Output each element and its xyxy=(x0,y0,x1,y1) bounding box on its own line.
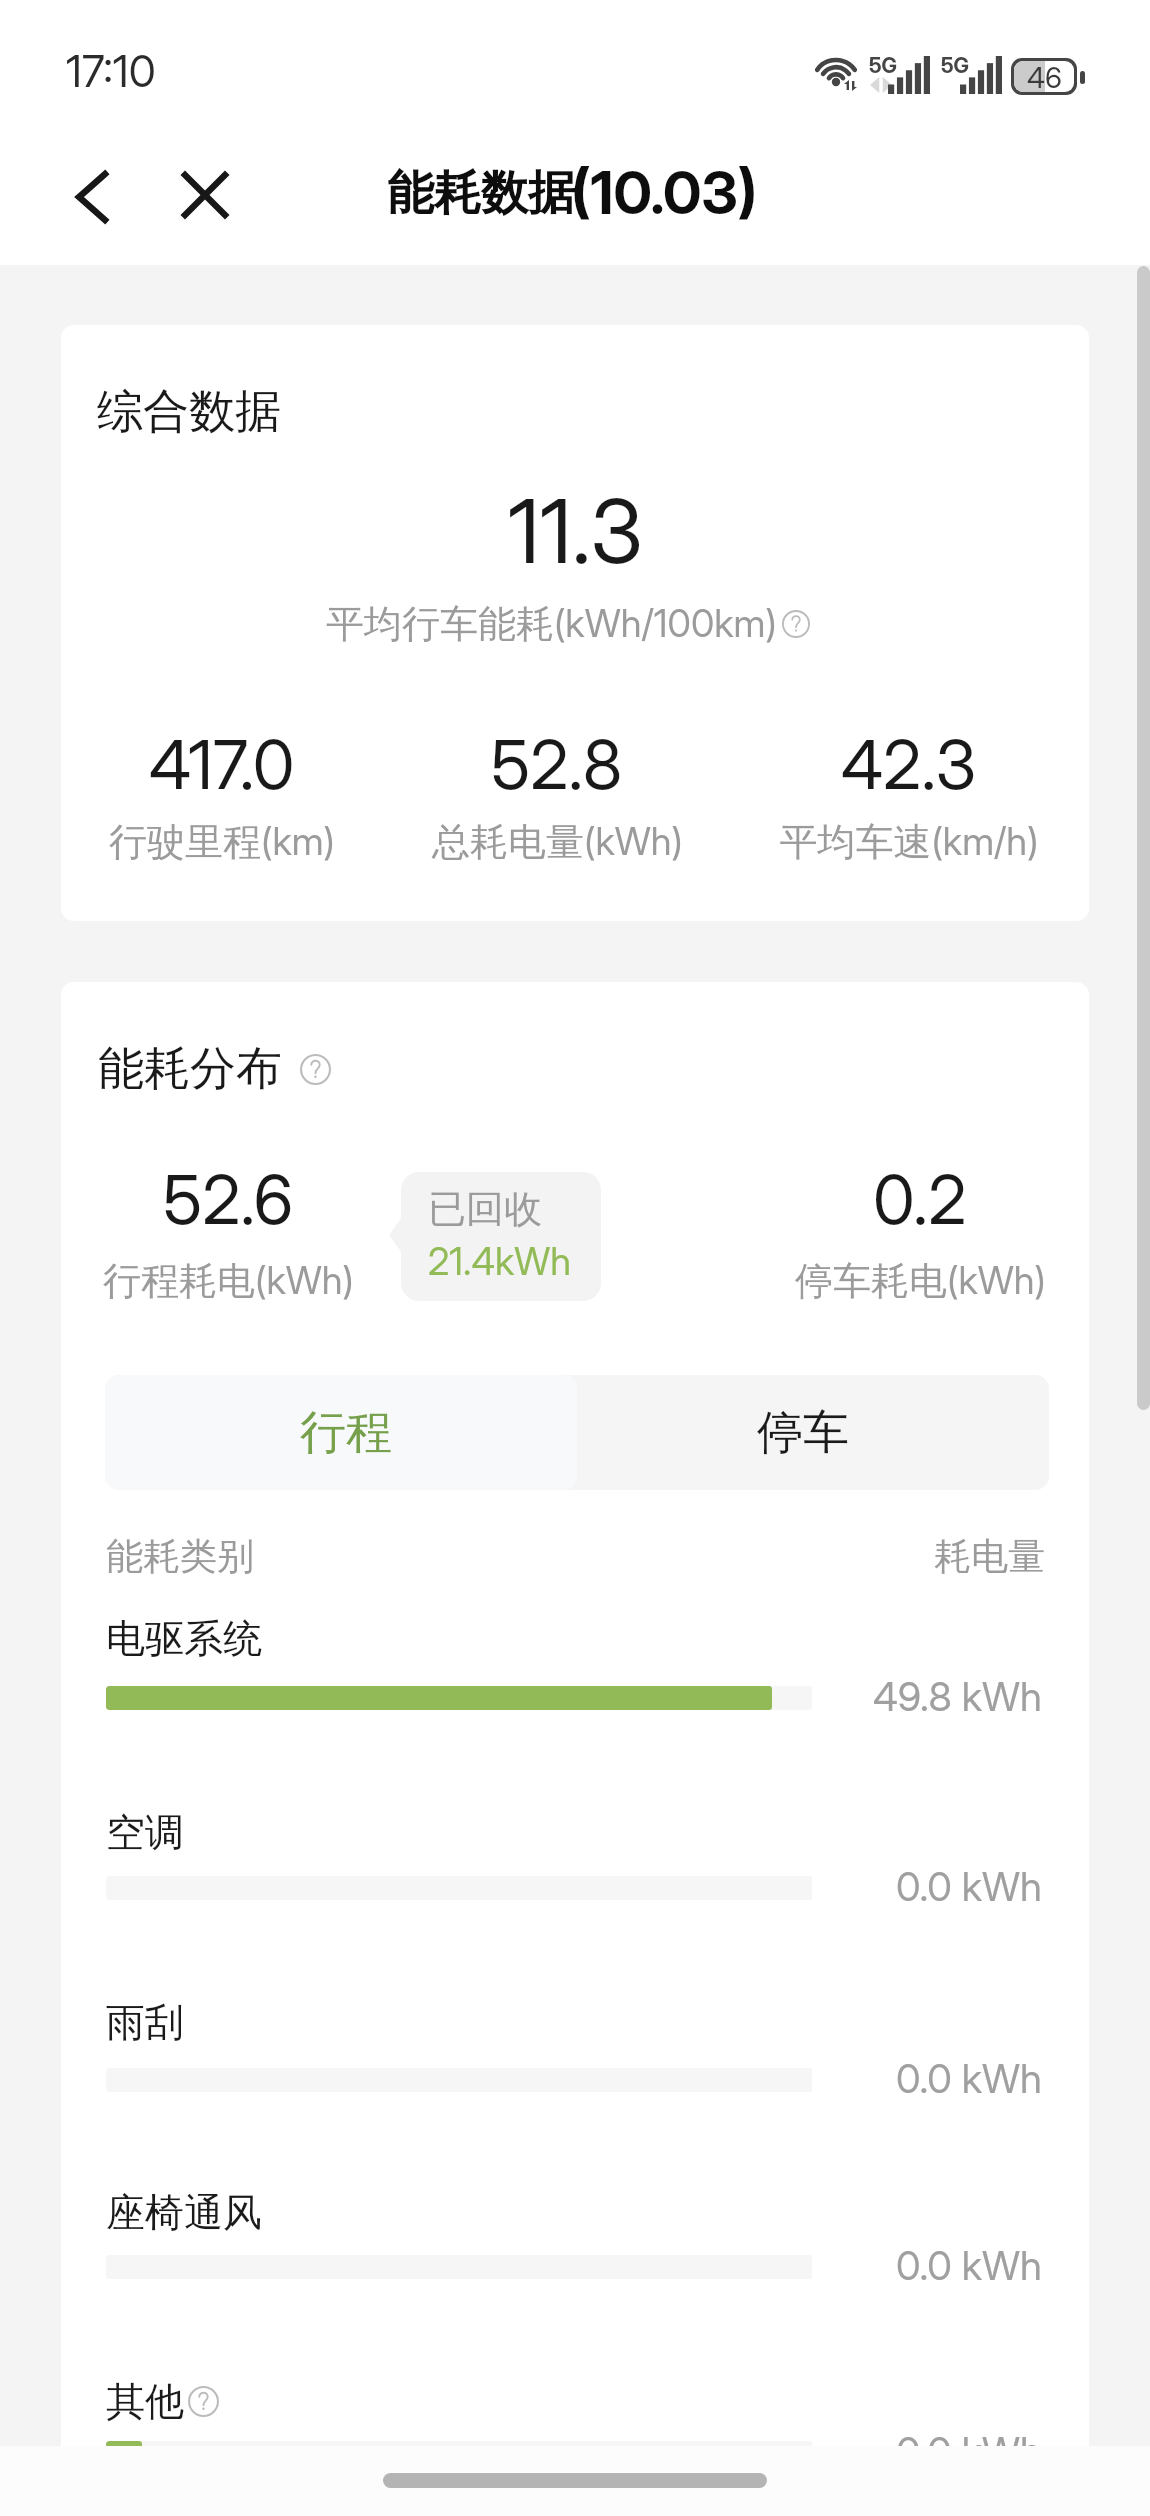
staticText: 行程 xyxy=(300,1404,392,1462)
staticText: 能耗数据 xyxy=(387,164,575,223)
staticText: 17:10 xyxy=(66,44,156,97)
staticText: 能耗类别 xyxy=(106,1533,254,1580)
staticText: 综合数据 xyxy=(97,383,281,441)
button[interactable]: About average consumption xyxy=(782,610,810,638)
staticText: 0.2 xyxy=(873,1158,967,1240)
button[interactable]: Close xyxy=(164,150,246,240)
staticText: 0.0 kWh xyxy=(896,2241,1042,2289)
staticText: 耗电量 xyxy=(934,1533,1045,1580)
staticText: 座椅通风 xyxy=(106,2188,262,2237)
staticText: 行程耗电(kWh) xyxy=(103,1257,354,1305)
button[interactable]: About energy distribution xyxy=(300,1054,331,1085)
staticText: 平均行车能耗(kWh/100km) xyxy=(326,600,777,648)
staticText: 52.6 xyxy=(163,1158,294,1240)
staticText: 空调 xyxy=(106,1808,184,1857)
staticText: 49.8 kWh xyxy=(873,1672,1042,1720)
staticText: 42.3 xyxy=(841,723,977,805)
staticText: 46 xyxy=(1027,61,1062,91)
staticText: 5G xyxy=(941,53,970,78)
staticText: 总耗电量(kWh) xyxy=(432,818,683,866)
staticText: 平均车速(km/h) xyxy=(779,818,1039,866)
button[interactable]: Back xyxy=(52,151,132,243)
staticText: 0.0 kWh xyxy=(896,2054,1042,2102)
button[interactable]: 停车 xyxy=(577,1375,1049,1490)
staticText: 5G xyxy=(869,53,898,78)
staticText: 其他 xyxy=(106,2377,184,2426)
staticText: 雨刮 xyxy=(106,1998,184,2047)
staticText: 行驶里程(km) xyxy=(109,818,335,866)
staticText: 0.0 kWh xyxy=(896,2427,1042,2462)
staticText: 停车 xyxy=(757,1404,849,1462)
staticText: 停车耗电(kWh) xyxy=(795,1257,1046,1305)
staticText: 417.0 xyxy=(149,723,295,805)
staticText: (10.03) xyxy=(571,157,758,228)
staticText: 能耗分布 xyxy=(98,1040,282,1098)
button[interactable]: About other consumption xyxy=(188,2386,219,2417)
button[interactable]: 行程 xyxy=(105,1375,577,1490)
staticText: 52.8 xyxy=(491,723,623,805)
staticText: 已回收 xyxy=(428,1185,542,1233)
staticText: 11.3 xyxy=(508,478,643,584)
staticText: 0.0 kWh xyxy=(896,1862,1042,1910)
staticText: 电驱系统 xyxy=(106,1614,262,1663)
staticText: 21.4kWh xyxy=(428,1238,572,1284)
